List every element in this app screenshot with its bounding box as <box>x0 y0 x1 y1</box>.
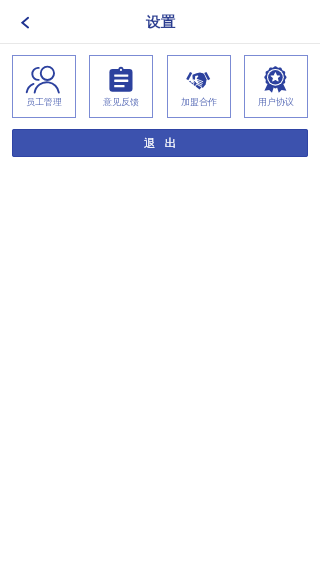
staticText: 员工管理 <box>26 96 62 107</box>
button[interactable]: 员工管理 <box>12 55 76 118</box>
staticText: 退 出 <box>144 135 176 151</box>
button[interactable]: 意见反馈 <box>89 55 153 118</box>
staticText: 意见反馈 <box>103 96 139 107</box>
button[interactable]: 加盟合作 <box>167 55 231 118</box>
staticText: 加盟合作 <box>181 96 217 107</box>
button[interactable]: 用户协议 <box>244 55 308 118</box>
button[interactable]: 退 出 <box>12 129 308 157</box>
staticText: 设置 <box>146 13 175 31</box>
staticText: 用户协议 <box>258 96 294 107</box>
button[interactable]: Back <box>0 0 46 43</box>
